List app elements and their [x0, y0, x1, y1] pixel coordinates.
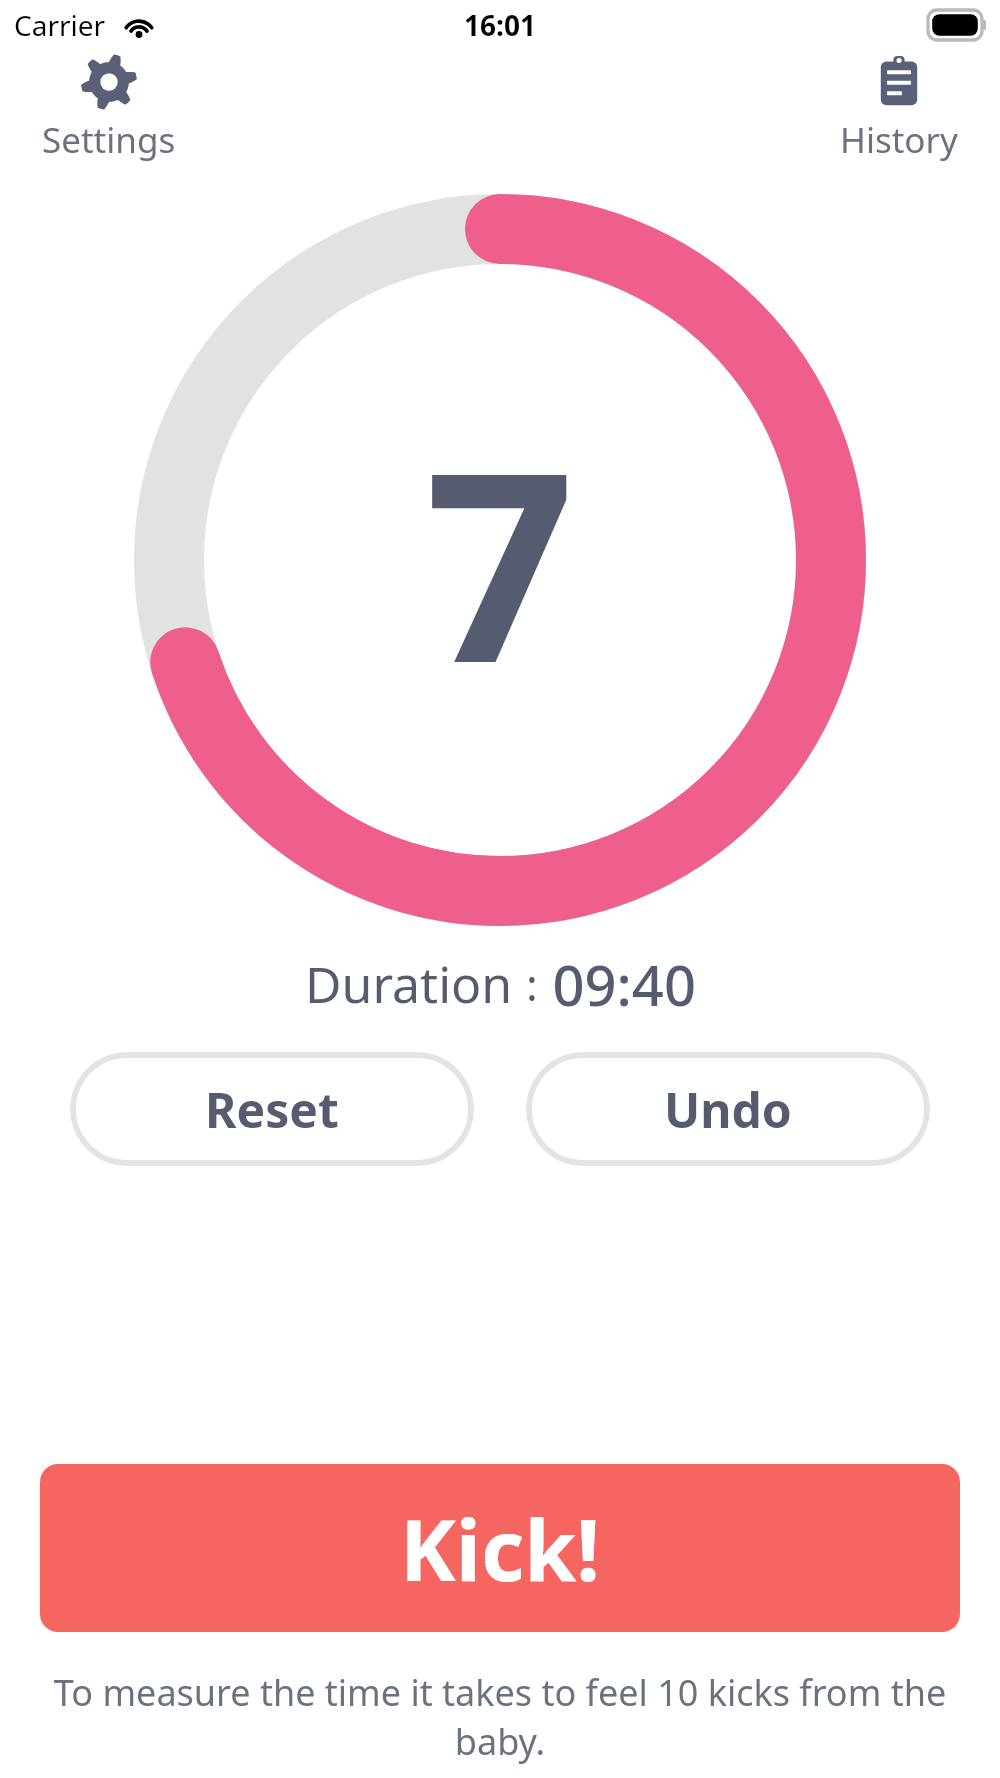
staticText: : — [526, 954, 538, 1014]
staticText: 09:40 — [538, 946, 696, 1022]
staticText: Carrier — [14, 6, 106, 44]
button[interactable]: Settings — [30, 50, 188, 168]
staticText: Undo — [664, 1077, 792, 1142]
button[interactable]: Undo — [526, 1052, 930, 1166]
staticText: To measure the time it takes to feel 10 … — [14, 1668, 986, 1766]
staticText: Kick! — [400, 1491, 601, 1605]
staticText: 16:01 — [464, 6, 536, 44]
button[interactable]: Reset — [70, 1052, 474, 1166]
staticText: Reset — [205, 1077, 339, 1142]
button[interactable]: History — [828, 50, 970, 168]
button[interactable]: Kick! — [40, 1464, 960, 1632]
staticText: History — [840, 116, 958, 164]
staticText: Duration — [305, 950, 526, 1018]
staticText: Settings — [42, 116, 176, 164]
staticText: 7 — [425, 382, 575, 739]
